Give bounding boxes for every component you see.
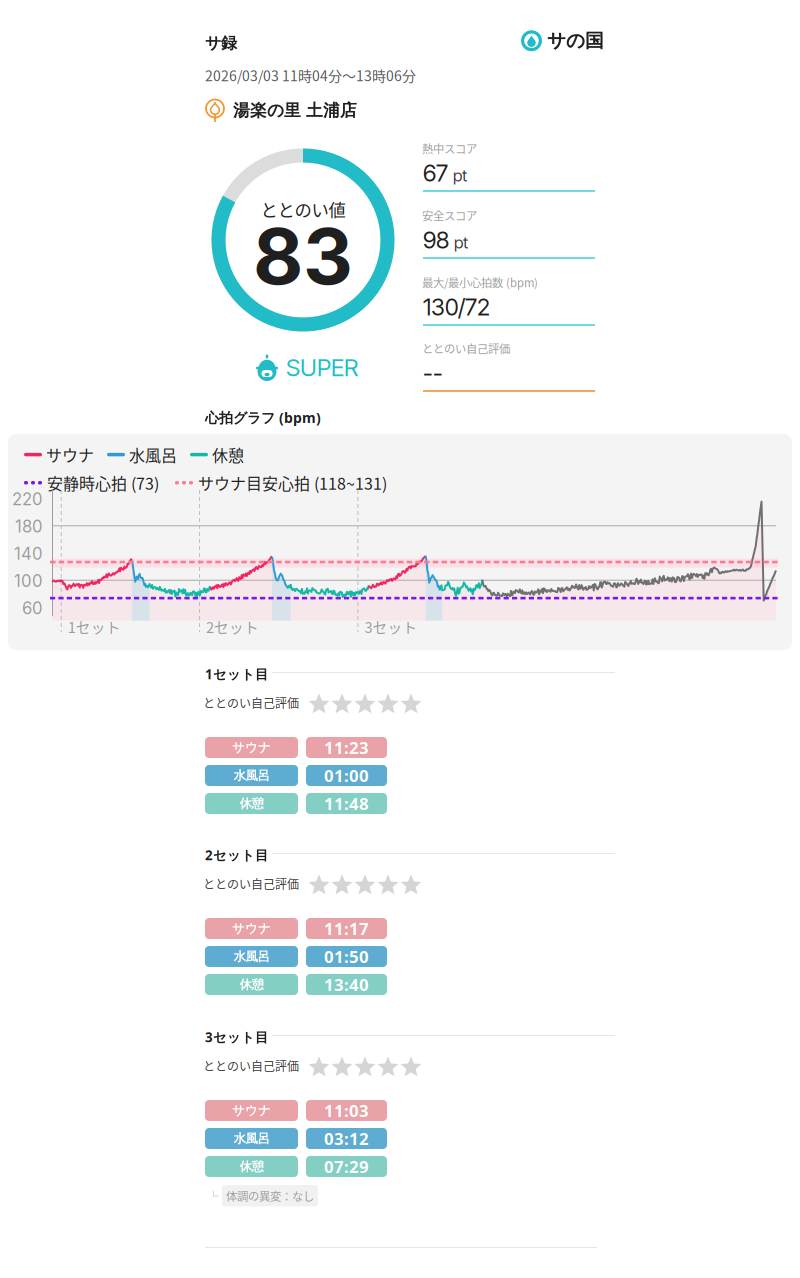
- staticText: サウナ: [232, 1103, 271, 1118]
- button[interactable]: 水風呂: [205, 1128, 387, 1149]
- staticText: 湯楽の里 土浦店: [233, 100, 357, 121]
- staticText: ととのい自己評価: [422, 340, 510, 356]
- staticText: 最大/最小心拍数 (bpm): [422, 274, 538, 290]
- staticText: 1セット: [68, 616, 121, 637]
- staticText: 180: [15, 516, 43, 536]
- staticText: 3セット: [364, 616, 417, 637]
- staticText: ととのい自己評価: [203, 875, 299, 892]
- staticText: 83: [253, 209, 353, 303]
- staticText: 体調の異変：なし: [226, 1187, 314, 1204]
- staticText: ととのい値: [260, 196, 345, 222]
- staticText: 01:50: [324, 945, 369, 968]
- staticText: 熱中スコア: [422, 140, 477, 156]
- staticText: 休憩: [239, 977, 263, 992]
- button[interactable]: 休憩: [205, 793, 387, 814]
- staticText: 水風呂: [233, 949, 269, 964]
- staticText: 心拍グラフ (bpm): [205, 408, 321, 427]
- staticText: 水風呂: [129, 443, 177, 466]
- staticText: 2セット目: [205, 846, 268, 864]
- staticText: └: [208, 1188, 219, 1203]
- staticText: --: [423, 359, 443, 387]
- staticText: 67: [423, 159, 448, 187]
- staticText: 11:03: [324, 1099, 369, 1122]
- staticText: サウナ目安心拍 (118~131): [198, 471, 387, 494]
- staticText: 13:40: [324, 973, 369, 996]
- staticText: 休憩: [239, 1159, 263, 1174]
- staticText: 安全スコア: [422, 207, 477, 223]
- button[interactable]: サウナ: [205, 737, 387, 758]
- staticText: 100: [14, 571, 43, 591]
- button[interactable]: 水風呂: [205, 946, 387, 967]
- staticText: 07:29: [324, 1155, 369, 1178]
- staticText: 60: [22, 598, 43, 618]
- staticText: サの国: [547, 29, 604, 52]
- staticText: 水風呂: [233, 768, 269, 783]
- staticText: pt: [453, 165, 467, 186]
- staticText: 2026/03/03 11時04分〜13時06分: [205, 65, 416, 85]
- button[interactable]: 水風呂: [205, 765, 387, 786]
- staticText: 1セット目: [205, 665, 268, 683]
- staticText: SUPER: [286, 353, 358, 382]
- staticText: 11:48: [324, 792, 369, 815]
- staticText: サウナ: [232, 740, 271, 755]
- staticText: 220: [12, 489, 43, 509]
- staticText: 130/72: [423, 293, 490, 321]
- button[interactable]: 休憩: [205, 1156, 387, 1177]
- staticText: 水風呂: [233, 1131, 269, 1146]
- staticText: 3セット目: [205, 1028, 268, 1046]
- staticText: 休憩: [239, 796, 263, 811]
- staticText: サウナ: [232, 921, 271, 936]
- staticText: ととのい自己評価: [203, 694, 299, 711]
- staticText: pt: [454, 232, 468, 253]
- button[interactable]: サウナ: [205, 918, 387, 939]
- staticText: 11:17: [324, 917, 369, 940]
- staticText: 140: [14, 543, 43, 564]
- button[interactable]: サウナ: [205, 1100, 387, 1121]
- staticText: 安静時心拍 (73): [47, 471, 159, 494]
- staticText: ととのい自己評価: [203, 1057, 299, 1074]
- staticText: サウナ: [46, 443, 94, 466]
- staticText: 休憩: [212, 443, 244, 466]
- button[interactable]: 休憩: [205, 974, 387, 995]
- staticText: 11:23: [324, 736, 369, 759]
- button[interactable]: 湯楽の里 土浦店: [205, 98, 357, 123]
- staticText: 01:00: [324, 764, 369, 787]
- staticText: 98: [423, 226, 449, 254]
- button[interactable]: サの国: [521, 29, 604, 52]
- staticText: サ録: [205, 33, 237, 53]
- staticText: 2セット: [206, 616, 259, 637]
- staticText: 03:12: [324, 1127, 369, 1150]
